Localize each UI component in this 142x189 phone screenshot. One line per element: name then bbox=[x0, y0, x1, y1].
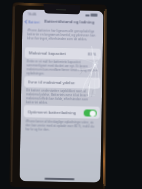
staticText: Maksimal kapacitet bbox=[29, 50, 67, 56]
staticText: Dette er et mål for batteriets kapacitet… bbox=[26, 59, 99, 77]
button[interactable]: Optimeret batteriladning bbox=[28, 105, 97, 119]
button[interactable]: Battery health and charging settings bbox=[0, 0, 142, 189]
staticText: iPhone lærer af din daglige opladningsru… bbox=[25, 119, 97, 133]
staticText: 83 % bbox=[88, 51, 97, 57]
button[interactable]: Evne til maksimal ydelse bbox=[28, 76, 96, 89]
staticText: 16:46 bbox=[27, 11, 37, 17]
button[interactable]: Optimized battery charging, on bbox=[84, 109, 97, 117]
button[interactable]: Maksimal kapacitet bbox=[29, 47, 97, 60]
staticText: Optimeret batteriladning bbox=[28, 109, 77, 115]
staticText: Evne til maksimal ydelse bbox=[28, 79, 75, 85]
button[interactable]: Back to Battery bbox=[24, 19, 40, 25]
staticText: Batteri bbox=[28, 19, 40, 25]
staticText: Dit batteri understøtter i øjeblikket no… bbox=[26, 88, 98, 106]
staticText: iPhone-batterier har ligesom alle genopl… bbox=[27, 28, 99, 42]
staticText: Batteritilstand og ladning bbox=[44, 19, 95, 25]
